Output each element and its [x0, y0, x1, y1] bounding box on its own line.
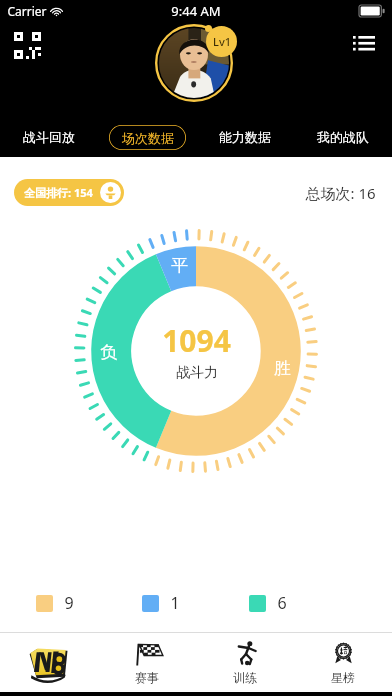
staticText: 9:44 AM	[171, 2, 221, 20]
button[interactable]: 1	[142, 592, 249, 614]
button[interactable]: Menu	[344, 24, 384, 64]
button[interactable]: Profile avatar, level 1	[155, 24, 237, 106]
button[interactable]: 星榜	[294, 633, 392, 692]
staticText: 胜	[274, 358, 291, 379]
staticText: 1	[170, 592, 180, 614]
staticText: 我的战队	[317, 129, 369, 145]
staticText: 战斗回放	[23, 129, 75, 145]
staticText: 训练	[233, 670, 257, 685]
button[interactable]: Scan QR code	[8, 26, 46, 64]
button[interactable]: 全国排行: 154	[14, 179, 124, 206]
staticText: 全国排行: 154	[24, 185, 93, 200]
button[interactable]: 能力数据	[196, 117, 294, 157]
button[interactable]: 战斗回放	[0, 117, 98, 157]
staticText: 战斗力	[176, 364, 218, 382]
staticText: 1094	[162, 320, 231, 361]
staticText: 赛事	[135, 670, 159, 685]
button[interactable]: 胜	[65, 220, 327, 482]
button[interactable]: 我的战队	[294, 117, 392, 157]
button[interactable]: 6	[249, 592, 356, 614]
button[interactable]: 9	[36, 592, 142, 614]
staticText: Lv1	[213, 34, 231, 49]
staticText: 总场次: 16	[305, 183, 376, 203]
staticText: 平	[171, 255, 188, 276]
button[interactable]: 训练	[196, 633, 294, 692]
button[interactable]: 场次数据	[98, 117, 196, 157]
staticText: Carrier	[7, 3, 47, 19]
staticText: 负	[100, 342, 117, 363]
button[interactable]: Home	[0, 633, 98, 692]
staticText: 能力数据	[219, 129, 271, 145]
staticText: 星榜	[331, 670, 355, 685]
staticText: 6	[277, 592, 287, 614]
staticText: 9	[64, 592, 74, 614]
staticText: 场次数据	[122, 130, 174, 146]
button[interactable]: 赛事	[98, 633, 196, 692]
